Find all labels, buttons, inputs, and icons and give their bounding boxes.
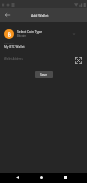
button[interactable]: Back — [0, 8, 14, 22]
staticText: Bitcoin — [17, 34, 27, 38]
staticText: Add Wallet — [31, 13, 49, 18]
button[interactable]: Select Coin Type — [0, 26, 87, 41]
button[interactable]: Back — [5, 172, 29, 182]
staticText: Save — [40, 73, 48, 77]
button[interactable]: Scan QR code — [72, 54, 84, 66]
button[interactable]: Recent apps — [53, 172, 77, 182]
staticText: Wallet Address — [4, 57, 23, 61]
button[interactable]: Save — [35, 71, 53, 78]
staticText: My BTC Wallet — [4, 45, 25, 49]
staticText: Wallet Name — [4, 42, 14, 44]
button[interactable]: Home — [29, 172, 53, 182]
staticText: Select Coin Type — [17, 29, 43, 33]
